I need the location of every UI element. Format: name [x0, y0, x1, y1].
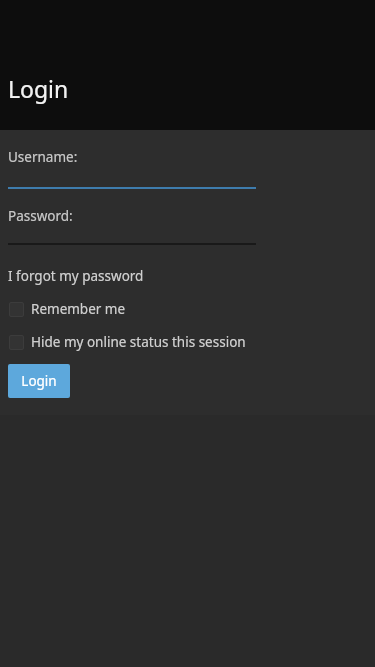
- staticText: Login: [21, 372, 57, 390]
- staticText: Remember me: [31, 300, 126, 318]
- button[interactable]: Login: [8, 364, 70, 398]
- button[interactable]: [8, 223, 256, 245]
- staticText: Username:: [8, 148, 78, 166]
- button[interactable]: I forgot my password: [6, 265, 146, 287]
- button[interactable]: [8, 164, 256, 189]
- staticText: Login: [8, 73, 69, 104]
- staticText: Password:: [8, 207, 73, 225]
- button[interactable]: Remember me: [6, 298, 126, 320]
- staticText: Hide my online status this session: [31, 333, 246, 351]
- button[interactable]: Hide my online status this session: [6, 331, 246, 353]
- staticText: I forgot my password: [8, 267, 144, 285]
